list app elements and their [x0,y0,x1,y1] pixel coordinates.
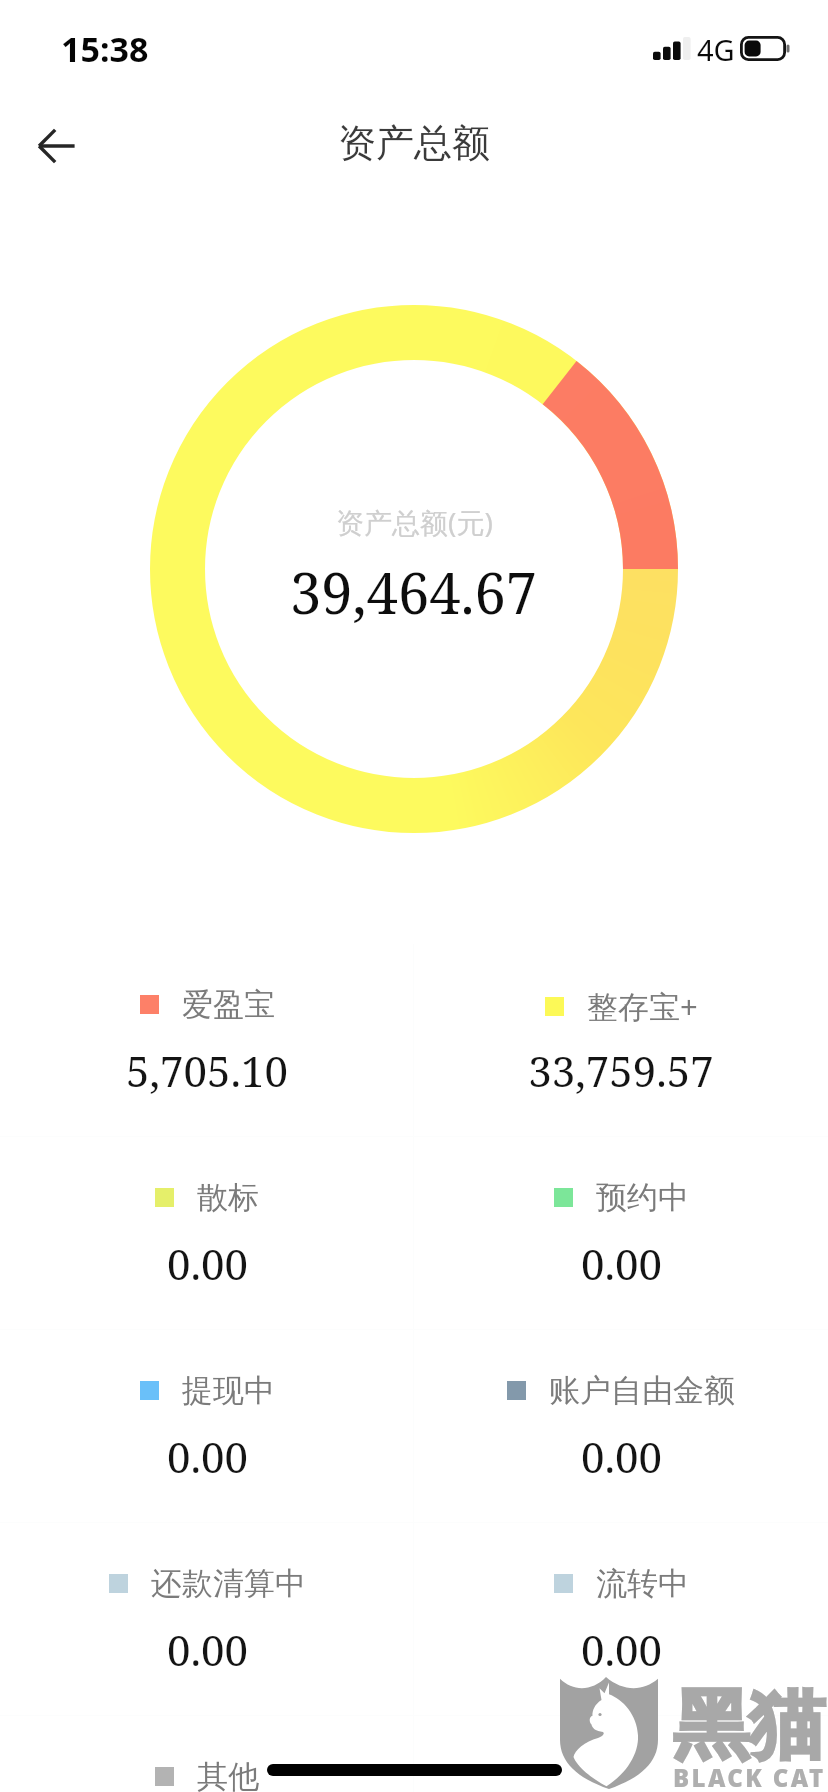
staticText: 0.00 [167,1428,248,1485]
staticText: 其他 [197,1757,259,1792]
staticText: 黑猫 [673,1678,825,1774]
button[interactable]: 流转中 [414,1523,828,1715]
staticText: 整存宝+ [587,985,698,1027]
staticText: 资产总额 [338,119,490,167]
staticText: 散标 [197,1178,259,1217]
button[interactable]: 散标 [0,1137,414,1329]
staticText: 资产总额(元) [336,503,493,541]
staticText: 0.00 [167,1235,248,1292]
button[interactable]: 爱盈宝 [0,944,414,1136]
button[interactable]: 账户自由金额 [414,1330,828,1522]
staticText: 预约中 [596,1178,689,1217]
staticText: 账户自由金额 [549,1371,735,1410]
staticText: 还款清算中 [151,1564,306,1603]
button[interactable]: 提现中 [0,1330,414,1522]
staticText: 39,464.67 [290,554,538,630]
staticText: 0.00 [581,1428,662,1485]
staticText: 提现中 [182,1371,275,1410]
button[interactable]: 预约中 [414,1137,828,1329]
staticText: 爱盈宝 [182,985,275,1024]
staticText: 4G [697,30,735,69]
staticText: 0.00 [581,1621,662,1678]
staticText: 15:38 [61,26,149,72]
button[interactable]: Back [15,102,103,190]
button[interactable]: 整存宝+ [414,944,828,1136]
button[interactable]: 还款清算中 [0,1523,414,1715]
staticText: 0.00 [167,1621,248,1678]
staticText: 流转中 [596,1564,689,1603]
staticText: BLACK CAT [673,1761,826,1792]
staticText: 0.00 [581,1235,662,1292]
button[interactable]: 其他 [0,1716,414,1792]
staticText: 33,759.57 [528,1042,714,1099]
staticText: 5,705.10 [126,1042,288,1099]
